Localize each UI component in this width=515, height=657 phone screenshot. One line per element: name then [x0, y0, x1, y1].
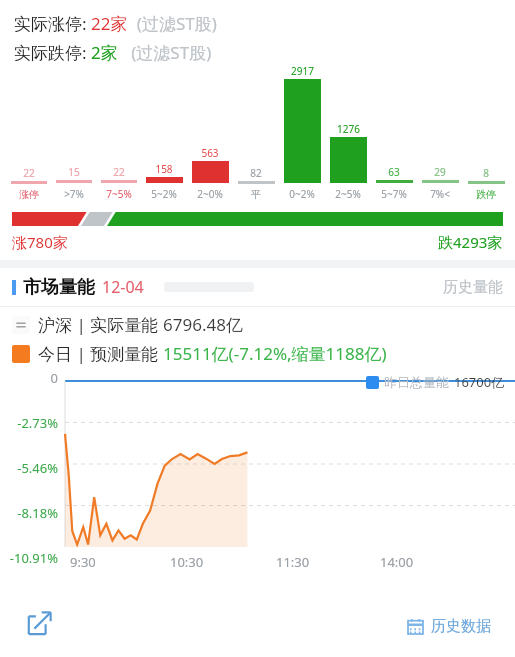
staticText: 今日 | 预测量能 — [38, 342, 163, 365]
staticText: -5.46% — [17, 459, 58, 477]
staticText: 涨停 — [19, 188, 39, 201]
staticText: 2~0% — [197, 187, 223, 201]
staticText: 16700亿 — [454, 373, 505, 391]
staticText: 1276 — [337, 122, 360, 136]
staticText: 15511亿(-7.12%,缩量1188亿) — [163, 342, 387, 365]
staticText: 昨日总量能 — [384, 374, 449, 390]
staticText: 市场量能 — [23, 276, 95, 299]
staticText: 29 — [434, 165, 446, 179]
staticText: >7% — [64, 187, 84, 201]
staticText: 历史量能 — [443, 278, 503, 297]
staticText: -2.73% — [17, 414, 58, 432]
staticText: -8.18% — [17, 504, 58, 522]
staticText: 历史数据 — [431, 617, 491, 636]
staticText: 8 — [483, 166, 489, 180]
staticText: 9:30 — [70, 553, 96, 571]
staticText: 5~7% — [381, 187, 407, 201]
staticText: 5~2% — [151, 187, 177, 201]
staticText: 158 — [155, 162, 173, 176]
staticText: 跌4293家 — [438, 232, 503, 252]
staticText: 7%< — [430, 187, 450, 201]
staticText: 实际跌停: — [14, 41, 91, 64]
button[interactable]: 市场量能 — [0, 268, 515, 306]
staticText: 2~5% — [335, 187, 361, 201]
button[interactable]: 历史数据 — [395, 610, 503, 643]
staticText: 63 — [388, 165, 400, 179]
staticText: (过滤ST股) — [118, 41, 212, 64]
staticText: 7~5% — [106, 187, 132, 201]
staticText: 12-04 — [102, 276, 144, 298]
staticText: 563 — [201, 146, 219, 160]
staticText: 平 — [251, 188, 261, 201]
staticText: 82 — [250, 166, 262, 180]
staticText: 14:00 — [380, 553, 414, 571]
staticText: -10.91% — [9, 549, 58, 567]
staticText: 6796.48亿 — [163, 313, 243, 336]
staticText: 2917 — [291, 64, 314, 78]
button[interactable]: Share — [12, 595, 68, 651]
staticText: 22 — [23, 166, 35, 180]
staticText: 22 — [113, 165, 125, 179]
staticText: 沪深 | 实际量能 — [38, 313, 163, 336]
staticText: 0 — [50, 369, 58, 387]
staticText: 22家 — [91, 12, 128, 35]
staticText: 0~2% — [289, 187, 315, 201]
staticText: 10:30 — [170, 553, 204, 571]
staticText: 11:30 — [276, 553, 310, 571]
staticText: 2家 — [91, 41, 118, 64]
staticText: 跌停 — [476, 188, 496, 201]
staticText: 15 — [68, 165, 80, 179]
staticText: (过滤ST股) — [128, 12, 217, 35]
staticText: 实际涨停: — [14, 12, 91, 35]
staticText: 涨780家 — [12, 232, 68, 252]
